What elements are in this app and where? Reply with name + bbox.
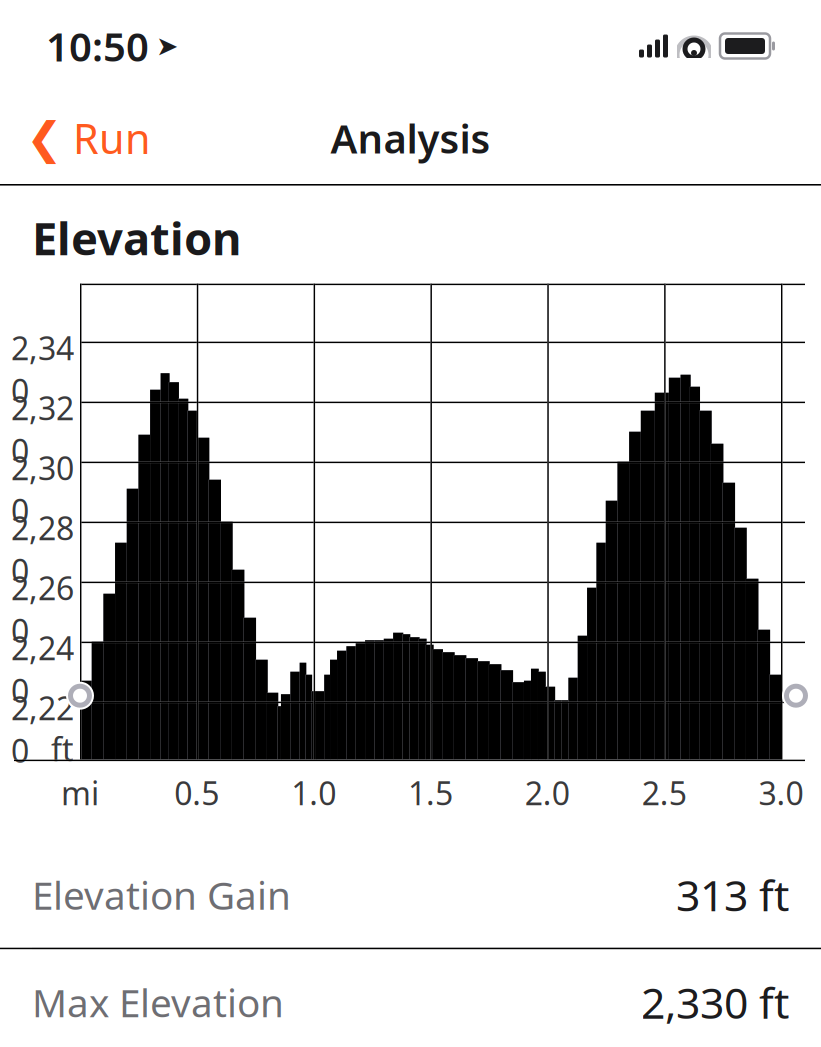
- staticText: Run: [73, 111, 151, 165]
- button[interactable]: Range start: [66, 682, 94, 710]
- staticText: 2,240: [11, 627, 74, 712]
- staticText: 3.0: [758, 772, 803, 814]
- staticText: mi: [61, 772, 99, 814]
- staticText: 1.5: [408, 772, 453, 814]
- staticText: ft: [51, 728, 74, 770]
- staticText: Analysis: [330, 111, 490, 164]
- staticText: 2,260: [11, 567, 74, 652]
- staticText: 2,280: [11, 507, 74, 592]
- staticText: Elevation: [32, 207, 241, 268]
- staticText: 0.5: [174, 772, 219, 814]
- button[interactable]: Max Elevation: [0, 949, 821, 1047]
- staticText: 2,300: [11, 447, 74, 532]
- staticText: 10:50: [46, 19, 149, 72]
- button[interactable]: ❮: [0, 101, 177, 175]
- staticText: 2,330 ft: [641, 974, 789, 1031]
- staticText: Elevation Gain: [32, 869, 291, 920]
- staticText: 2.5: [642, 772, 687, 814]
- staticText: 1.0: [291, 772, 336, 814]
- staticText: 2.0: [525, 772, 570, 814]
- staticText: ➤: [156, 31, 178, 61]
- staticText: 2,340: [11, 327, 74, 412]
- staticText: ❮: [26, 113, 63, 163]
- button[interactable]: Range end: [782, 682, 810, 710]
- button[interactable]: Elevation Gain: [0, 842, 821, 948]
- staticText: 2,320: [11, 387, 74, 472]
- staticText: 2,220: [11, 687, 74, 772]
- staticText: Max Elevation: [32, 976, 284, 1028]
- staticText: 313 ft: [676, 866, 789, 923]
